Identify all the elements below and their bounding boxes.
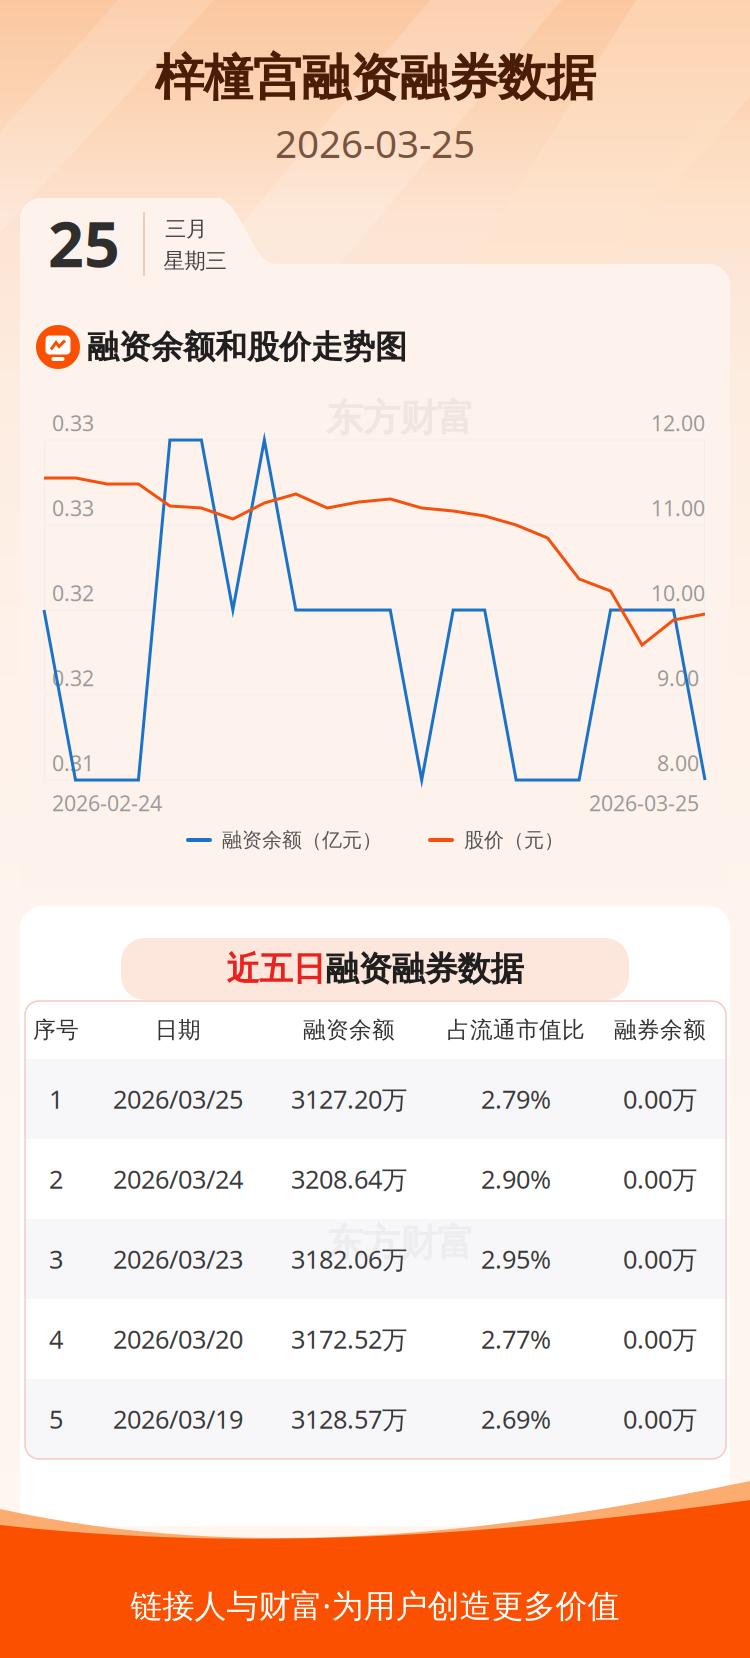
staticText: 占流通市值比 xyxy=(447,1016,585,1044)
staticText: 3128.57万 xyxy=(291,1402,407,1436)
staticText: 0.32 xyxy=(52,579,94,607)
staticText: 0.00万 xyxy=(623,1162,697,1196)
staticText: 东方财富 xyxy=(326,1220,474,1266)
staticText: 2.90% xyxy=(481,1162,551,1196)
staticText: 2.77% xyxy=(481,1322,551,1356)
staticText: 融资余额（亿元） xyxy=(222,828,382,852)
staticText: 融资余额和股价走势图 xyxy=(87,327,407,367)
staticText: 0.00万 xyxy=(623,1242,697,1276)
staticText: 3 xyxy=(49,1242,63,1276)
staticText: 0.00万 xyxy=(623,1402,697,1436)
staticText: 3182.06万 xyxy=(291,1242,407,1276)
staticText: 25 xyxy=(48,201,120,285)
staticText: 0.33 xyxy=(52,494,94,522)
staticText: 日期 xyxy=(155,1016,201,1044)
staticText: 2026-03-25 xyxy=(275,117,475,169)
staticText: 11.00 xyxy=(651,494,705,522)
staticText: 2026/03/25 xyxy=(113,1082,243,1116)
staticText: 3172.52万 xyxy=(291,1322,407,1356)
staticText: 梓橦宫融资融券数据 xyxy=(154,48,595,108)
staticText: 0.00万 xyxy=(623,1322,697,1356)
staticText: 融券余额 xyxy=(614,1016,706,1044)
staticText: 10.00 xyxy=(651,579,705,607)
staticText: 0.31 xyxy=(52,749,94,777)
staticText: 东方财富 xyxy=(326,395,474,441)
staticText: 0.00万 xyxy=(623,1082,697,1116)
staticText: 3208.64万 xyxy=(291,1162,407,1196)
staticText: 融资余额 xyxy=(303,1016,395,1044)
staticText: 0.32 xyxy=(52,664,94,692)
staticText: 0.33 xyxy=(52,409,94,437)
staticText: 5 xyxy=(49,1402,63,1436)
staticText: 2.79% xyxy=(481,1082,551,1116)
staticText: 股价（元） xyxy=(464,828,564,852)
staticText: 2026/03/20 xyxy=(113,1322,243,1356)
staticText: 2026/03/24 xyxy=(113,1162,243,1196)
staticText: 12.00 xyxy=(651,409,705,437)
staticText: 9.00 xyxy=(657,664,699,692)
staticText: 2026/03/23 xyxy=(113,1242,243,1276)
staticText: 2026-03-25 xyxy=(589,789,699,817)
staticText: 2026-02-24 xyxy=(52,789,162,817)
staticText: 2 xyxy=(49,1162,63,1196)
staticText: 融资融券数据 xyxy=(325,948,523,989)
staticText: 近五日 xyxy=(226,948,325,989)
staticText: 星期三 xyxy=(163,248,226,274)
staticText: 序号 xyxy=(33,1016,79,1044)
staticText: 2026/03/19 xyxy=(113,1402,243,1436)
staticText: 1 xyxy=(49,1082,63,1116)
staticText: 三月 xyxy=(165,216,207,242)
staticText: 链接人与财富·为用户创造更多价值 xyxy=(130,1584,619,1626)
staticText: 2.95% xyxy=(481,1242,551,1276)
staticText: 8.00 xyxy=(657,749,699,777)
staticText: 3127.20万 xyxy=(291,1082,407,1116)
staticText: 2.69% xyxy=(481,1402,551,1436)
staticText: 4 xyxy=(49,1322,63,1356)
